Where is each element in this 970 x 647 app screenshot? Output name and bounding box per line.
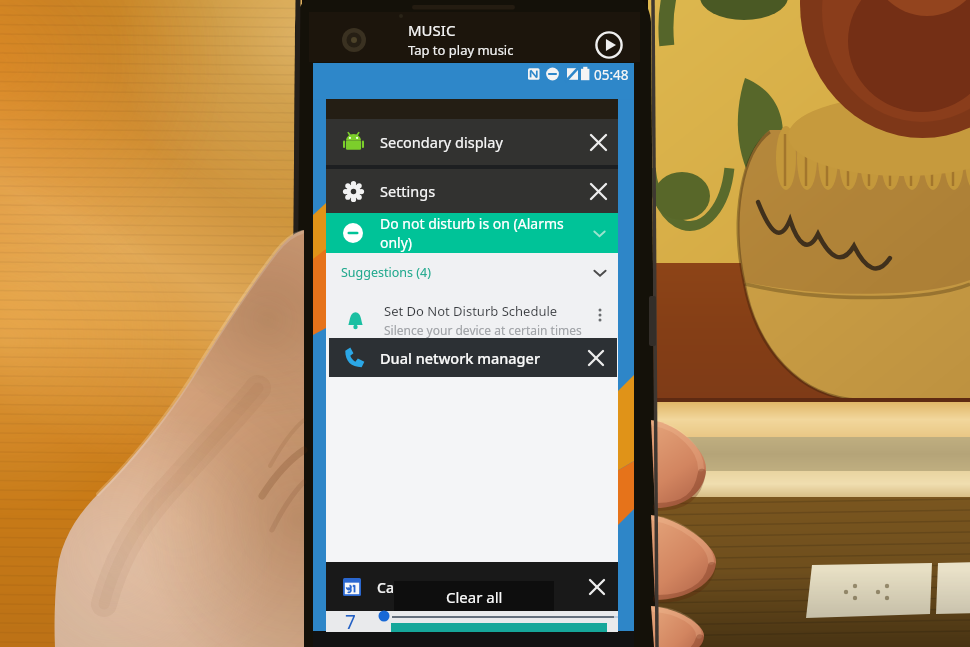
staticText: Set Do Not Disturb Schedule	[384, 302, 558, 320]
button[interactable]: Do not disturb is on (Alarms only)	[326, 213, 618, 253]
staticText: MUSIC	[408, 20, 456, 40]
button[interactable]: Clear all	[394, 581, 554, 611]
button[interactable]: Suggestions (4)	[326, 253, 618, 292]
staticText: Suggestions (4)	[341, 264, 431, 281]
button[interactable]: Set Do Not Disturb Schedule	[326, 292, 618, 340]
button[interactable]: Dual network manager	[329, 338, 617, 377]
staticText: Settings	[380, 181, 436, 201]
staticText: 05:48	[594, 66, 629, 84]
staticText: Do not disturb is on (Alarms only)	[380, 214, 568, 252]
button[interactable]: Dismiss	[576, 562, 618, 611]
staticText: Secondary display	[380, 132, 503, 152]
staticText: Clear all	[446, 587, 503, 607]
staticText: Dual network manager	[380, 348, 541, 368]
button[interactable]: Settings	[326, 169, 618, 213]
button[interactable]: Dismiss	[578, 169, 618, 213]
staticText: Calendar	[377, 578, 438, 597]
button[interactable]: Play	[595, 31, 623, 59]
button[interactable]: Dismiss	[575, 338, 617, 377]
staticText: Silence your device at certain times	[384, 322, 582, 338]
button[interactable]: Secondary display	[326, 119, 618, 165]
staticText: 7	[345, 609, 356, 630]
button[interactable]: Calendar	[326, 562, 618, 611]
button[interactable]: Dismiss	[578, 119, 618, 165]
staticText: Tap to play music	[408, 41, 514, 59]
